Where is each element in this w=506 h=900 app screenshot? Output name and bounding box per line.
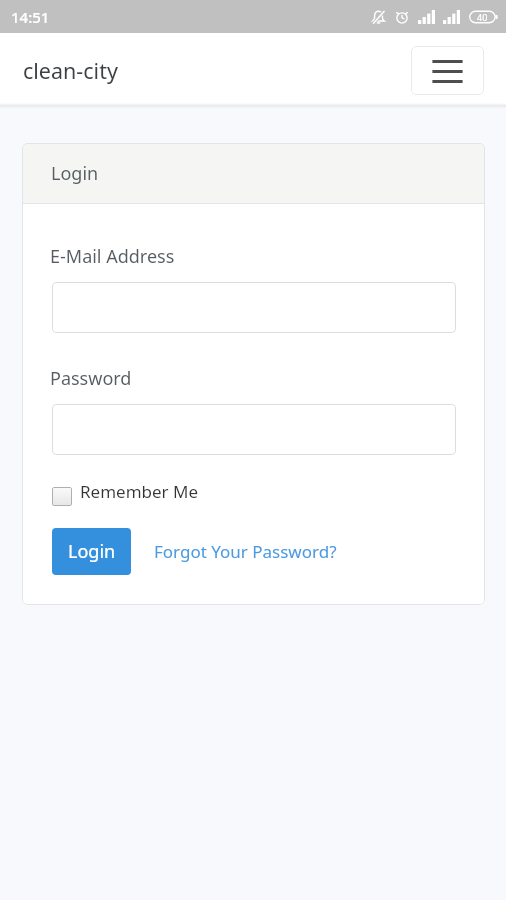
button[interactable]: Remember Me — [52, 480, 199, 503]
staticText: E-Mail Address — [50, 244, 175, 269]
staticText: 14:51 — [11, 7, 50, 27]
staticText: Password — [50, 366, 132, 391]
staticText: Login — [51, 161, 99, 186]
button[interactable] — [52, 282, 456, 333]
button[interactable]: Login — [52, 528, 131, 575]
staticText: Login — [68, 539, 116, 564]
button[interactable]: Open navigation menu — [411, 46, 484, 95]
button[interactable] — [52, 404, 456, 455]
staticText: clean-city — [23, 56, 118, 85]
button[interactable]: Forgot Your Password? — [154, 530, 337, 573]
staticText: 40 — [477, 11, 488, 23]
staticText: Forgot Your Password? — [154, 540, 337, 563]
staticText: Remember Me — [80, 480, 199, 503]
